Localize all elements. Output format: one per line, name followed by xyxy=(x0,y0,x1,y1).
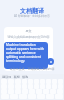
staticText: 文档翻译 xyxy=(0,7,64,15)
staticText: 建议词 联想 候选 xyxy=(0,75,31,79)
staticText: 原文 xyxy=(4,29,53,33)
staticText: AI 智能翻译 · 支持多种语言 xyxy=(0,14,64,18)
button[interactable]: Send xyxy=(47,58,54,65)
staticText: 译文已生成，可继续输入新的内容 xyxy=(0,67,64,71)
staticText: Machine translation output appears here … xyxy=(6,43,46,63)
staticText: 请输入或粘贴要翻译的文字内容 xyxy=(4,35,53,39)
